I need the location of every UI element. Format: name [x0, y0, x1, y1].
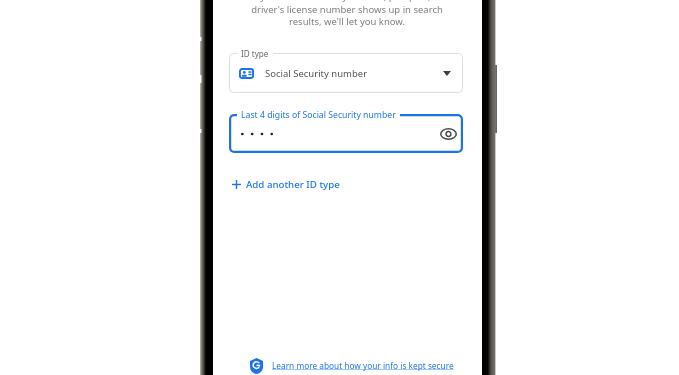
- button[interactable]: Add another ID type: [232, 176, 340, 193]
- staticText: If your Social Security number, passport…: [212, 0, 482, 27]
- staticText: Learn more about how your info is kept s…: [272, 360, 454, 371]
- button[interactable]: Social Security number: [229, 53, 463, 93]
- staticText: Social Security number: [265, 67, 368, 80]
- staticText: Add another ID type: [246, 178, 340, 191]
- button[interactable]: Show Social Security number: [440, 128, 457, 140]
- button[interactable]: Learn more about how your info is kept s…: [250, 356, 454, 375]
- staticText: Last 4 digits of Social Security number: [241, 109, 396, 121]
- staticText: ID type: [241, 48, 269, 59]
- button[interactable]: Show Social Security number: [229, 114, 463, 153]
